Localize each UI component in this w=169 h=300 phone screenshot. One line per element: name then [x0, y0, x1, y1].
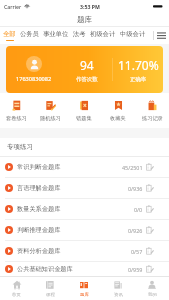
staticText: 常识判断金题库 [17, 163, 61, 171]
staticText: 17630830082 [16, 75, 52, 83]
button[interactable]: Categories menu [154, 27, 169, 44]
button[interactable]: 课程 [33, 277, 67, 300]
staticText: 资料分析金题库 [17, 247, 61, 255]
button[interactable]: 套卷练习 [0, 93, 33, 128]
staticText: 我的 [148, 292, 157, 298]
staticText: 判断推理金题库 [17, 226, 61, 234]
button[interactable]: 我的 [135, 277, 169, 300]
staticText: 练习记录 [142, 115, 163, 122]
staticText: 正确率 [130, 76, 147, 83]
staticText: 全部 [3, 30, 16, 38]
button[interactable]: 法考 [71, 27, 88, 44]
button[interactable]: 随机练习 [33, 93, 67, 128]
staticText: 0/959 [128, 266, 143, 273]
staticText: Carrier [4, 3, 22, 10]
button[interactable]: 数量关系金题库 [0, 199, 169, 219]
staticText: 收藏夹 [110, 115, 126, 122]
staticText: 0/936 [128, 185, 143, 192]
button[interactable]: 收藏夹 [101, 93, 135, 128]
staticText: 资讯 [114, 292, 123, 298]
staticText: 数量关系金题库 [17, 205, 61, 213]
button[interactable]: 错题集 [67, 93, 101, 128]
button[interactable]: 中级会计 [118, 27, 148, 44]
staticText: 中级会计 [120, 30, 146, 38]
staticText: 随机练习 [40, 115, 61, 122]
staticText: 法考 [73, 30, 86, 38]
button[interactable]: 初级会计 [88, 27, 118, 44]
staticText: 事业单位 [43, 30, 69, 38]
staticText: 3:53 PM [80, 3, 100, 10]
staticText: 0/926 [128, 227, 143, 234]
staticText: 作答次数 [76, 76, 98, 83]
staticText: 0/57 [131, 248, 143, 255]
staticText: 专项练习 [7, 143, 33, 151]
button[interactable]: 公务员 [18, 27, 41, 44]
staticText: 11.70% [118, 57, 159, 73]
staticText: 初级会计 [90, 30, 116, 38]
staticText: 题库 [77, 15, 92, 24]
staticText: 公共基础知识金题库 [17, 265, 73, 273]
button[interactable]: 题库 [67, 277, 101, 300]
staticText: 首页 [12, 292, 21, 298]
button[interactable]: 全部 [1, 27, 18, 44]
button[interactable]: 事业单位 [41, 27, 71, 44]
staticText: 课程 [46, 292, 55, 298]
staticText: 套卷练习 [6, 115, 27, 122]
staticText: 45/2501 [122, 164, 143, 171]
staticText: 言语理解金题库 [17, 184, 61, 192]
staticText: 错题集 [76, 115, 92, 122]
button[interactable]: 练习记录 [135, 93, 169, 128]
button[interactable]: 言语理解金题库 [0, 178, 169, 198]
button[interactable]: 判断推理金题库 [0, 220, 169, 240]
button[interactable]: 常识判断金题库 [0, 157, 169, 177]
staticText: 题库 [80, 292, 89, 298]
button[interactable]: 资料分析金题库 [0, 241, 169, 261]
button[interactable]: 17630830082 [6, 46, 163, 93]
button[interactable]: 公共基础知识金题库 [0, 262, 169, 276]
staticText: 公务员 [20, 30, 39, 38]
staticText: 0/0 [134, 206, 143, 213]
button[interactable]: 资讯 [101, 277, 135, 300]
staticText: 94 [80, 57, 94, 73]
button[interactable]: 首页 [0, 277, 33, 300]
